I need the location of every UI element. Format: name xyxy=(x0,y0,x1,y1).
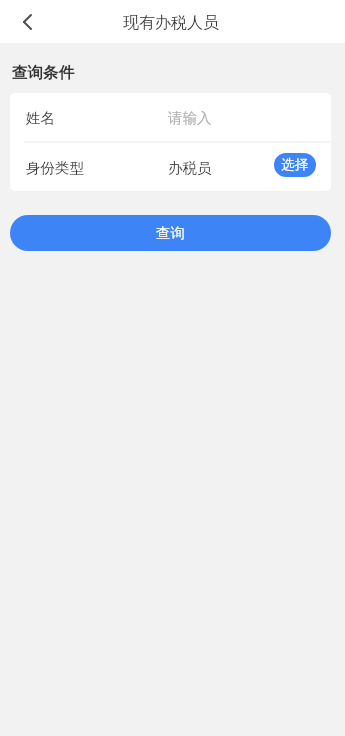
button[interactable]: 身份类型 xyxy=(10,141,331,191)
staticText: 查询 xyxy=(156,224,185,242)
staticText: 选择 xyxy=(281,156,309,173)
button[interactable]: Back xyxy=(0,0,54,43)
staticText: 办税员 xyxy=(168,159,212,177)
staticText: 现有办税人员 xyxy=(123,13,219,33)
button[interactable]: 选择 xyxy=(274,153,316,177)
staticText: 身份类型 xyxy=(26,159,84,177)
staticText: 查询条件 xyxy=(12,63,74,83)
button[interactable]: 查询 xyxy=(10,215,331,251)
button[interactable]: 姓名 xyxy=(10,93,331,141)
staticText: 请输入 xyxy=(168,109,212,127)
staticText: 姓名 xyxy=(26,109,55,127)
